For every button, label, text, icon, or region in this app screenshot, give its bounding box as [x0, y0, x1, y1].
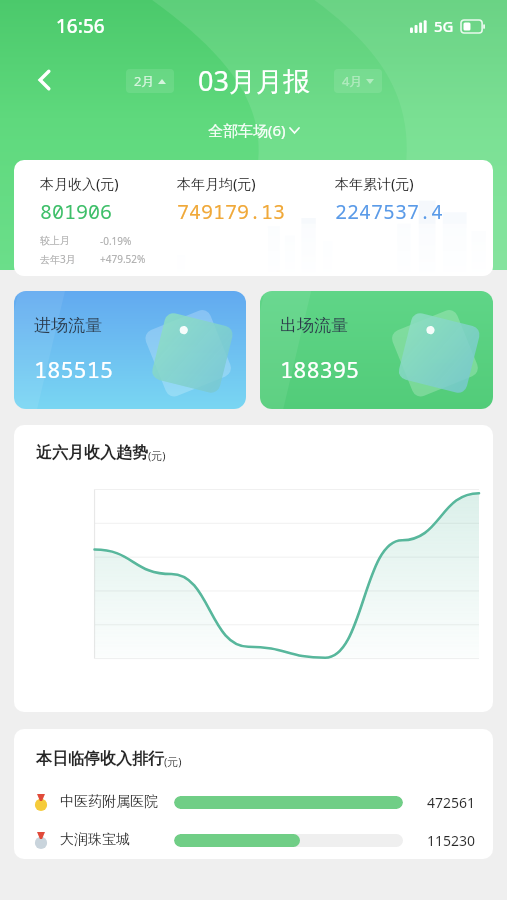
staticText: 中医药附属医院: [60, 793, 158, 811]
button[interactable]: 4月: [334, 69, 382, 93]
staticText: 16:56: [56, 13, 105, 39]
button[interactable]: 大润珠宝城: [14, 821, 493, 859]
button[interactable]: 全部车场(6): [200, 118, 308, 142]
button[interactable]: 出场流量: [260, 291, 493, 409]
staticText: 115230: [413, 831, 475, 850]
staticText: (元): [164, 754, 182, 769]
staticText: 大润珠宝城: [60, 831, 130, 849]
staticText: 去年3月: [40, 252, 76, 266]
staticText: 近六月收入趋势: [36, 443, 148, 463]
staticText: +479.52%: [100, 252, 146, 266]
staticText: 2月: [134, 72, 155, 90]
staticText: 188395: [280, 354, 360, 384]
button[interactable]: 进场流量: [14, 291, 246, 409]
staticText: 801906: [40, 198, 112, 225]
staticText: 本月收入(元): [40, 174, 119, 193]
staticText: 03月月报: [198, 62, 310, 99]
staticText: 185515: [34, 354, 114, 384]
staticText: 较上月: [40, 234, 70, 247]
staticText: 全部车场(6): [208, 120, 286, 140]
staticText: 本年月均(元): [177, 174, 256, 193]
button[interactable]: Back: [22, 60, 62, 100]
staticText: 出场流量: [280, 315, 348, 336]
button[interactable]: 2月: [126, 69, 174, 93]
button[interactable]: 中医药附属医院: [14, 783, 493, 821]
staticText: (元): [148, 448, 166, 463]
staticText: 本年累计(元): [335, 174, 414, 193]
button[interactable]: 近六月收入趋势: [14, 425, 493, 712]
staticText: 进场流量: [34, 315, 102, 336]
staticText: 本日临停收入排行: [36, 749, 164, 769]
staticText: 5G: [434, 16, 454, 36]
staticText: 749179.13: [177, 198, 285, 225]
staticText: 2247537.4: [335, 198, 443, 225]
staticText: 4月: [342, 72, 363, 90]
button[interactable]: 本月收入(元): [14, 160, 493, 276]
staticText: 472561: [413, 793, 475, 812]
staticText: -0.19%: [100, 234, 132, 248]
